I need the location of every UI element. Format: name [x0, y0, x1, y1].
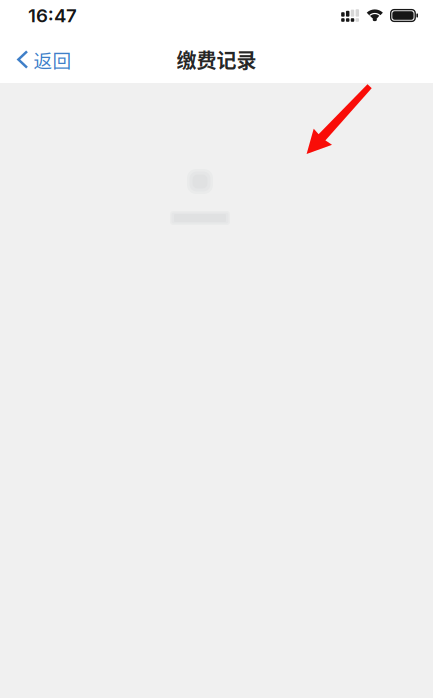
staticText: 返回: [33, 46, 71, 73]
staticText: 缴费记录: [176, 45, 256, 74]
staticText: 16:47: [28, 4, 77, 27]
button[interactable]: 返回: [0, 34, 83, 80]
